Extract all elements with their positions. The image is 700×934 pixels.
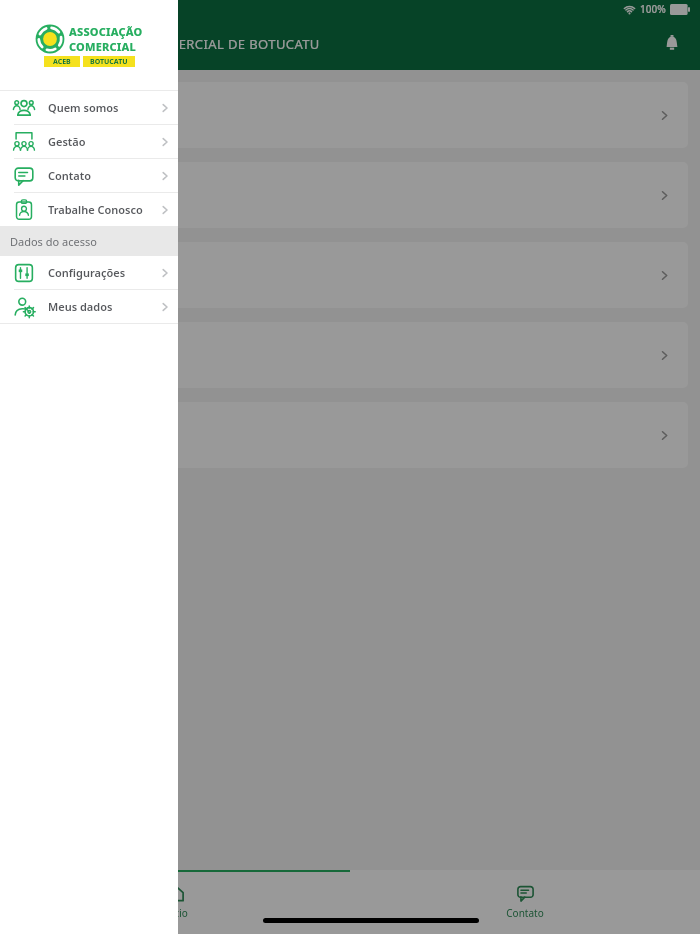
staticText: Quem somos [48, 100, 152, 115]
staticText: Dados do acesso [10, 234, 97, 249]
staticText: COMERCIAL [69, 39, 137, 54]
staticText: Trabalhe Conosco [48, 202, 152, 217]
staticText: ASSOCIAÇÃO [69, 24, 143, 39]
button[interactable]: Contato [12, 322, 688, 388]
staticText: Início [162, 906, 188, 920]
staticText: Meus dados [48, 299, 152, 314]
button[interactable]: Gestão [0, 125, 178, 158]
staticText: Gestão [26, 187, 68, 203]
button[interactable]: Notificações [652, 24, 692, 64]
button[interactable]: Trabalhe Conosco [12, 402, 688, 468]
staticText: Contato [48, 168, 152, 183]
staticText: BOTUCATU [90, 57, 128, 67]
button[interactable]: Quem somos [12, 82, 688, 148]
button[interactable]: Quem somos [0, 91, 178, 124]
button[interactable]: Contato [350, 870, 700, 934]
button[interactable]: Trabalhe Conosco [0, 193, 178, 226]
staticText: ASSOCIAÇÃO COMERCIAL DE BOTUCATU [60, 35, 320, 53]
staticText: Associe-se / Orçamento [26, 267, 167, 283]
button[interactable]: Configurações [0, 256, 178, 289]
button[interactable]: Meus dados [0, 290, 178, 323]
staticText: 100% [640, 2, 666, 16]
button[interactable]: Início [0, 870, 350, 934]
staticText: ACEB [53, 57, 71, 67]
staticText: Quem somos [26, 107, 105, 123]
button[interactable]: Associe-se / Orçamento [12, 242, 688, 308]
button[interactable]: Contato [0, 159, 178, 192]
staticText: Gestão [48, 134, 152, 149]
staticText: Contato [506, 906, 544, 920]
button[interactable]: Gestão [12, 162, 688, 228]
staticText: Configurações [48, 265, 152, 280]
